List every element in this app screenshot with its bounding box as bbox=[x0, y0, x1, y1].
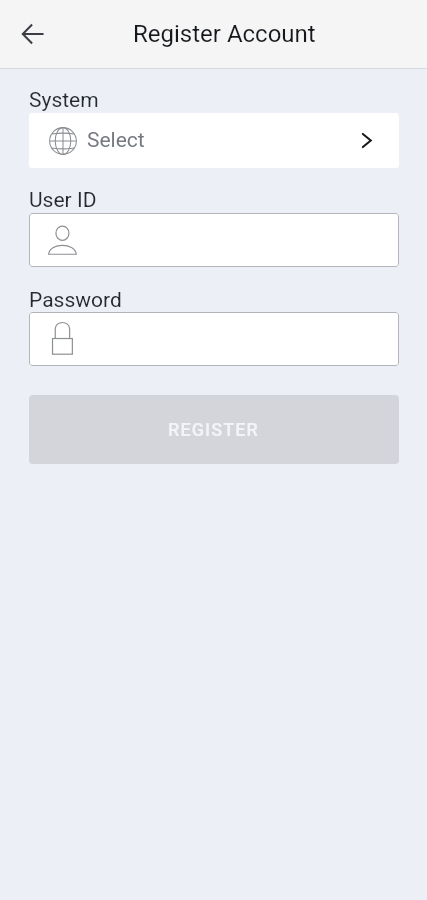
staticText: Register Account bbox=[133, 20, 316, 48]
staticText: REGISTER bbox=[168, 419, 260, 440]
button[interactable]: System, Select bbox=[29, 113, 399, 168]
staticText: Password bbox=[29, 288, 122, 313]
staticText: Select bbox=[87, 128, 145, 153]
button[interactable]: Back bbox=[9, 10, 57, 58]
staticText: User ID bbox=[29, 188, 97, 213]
button[interactable]: Password field bbox=[29, 312, 399, 366]
button[interactable]: User ID field bbox=[29, 213, 399, 267]
staticText: System bbox=[29, 88, 99, 113]
button[interactable]: REGISTER bbox=[29, 395, 399, 464]
